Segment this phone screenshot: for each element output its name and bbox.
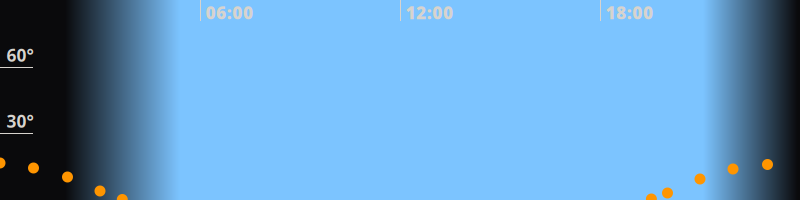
staticText: 30°: [6, 109, 33, 132]
staticText: 12:00: [405, 1, 453, 24]
staticText: 18:00: [605, 1, 653, 24]
staticText: 06:00: [205, 1, 253, 24]
staticText: 60°: [6, 43, 33, 66]
